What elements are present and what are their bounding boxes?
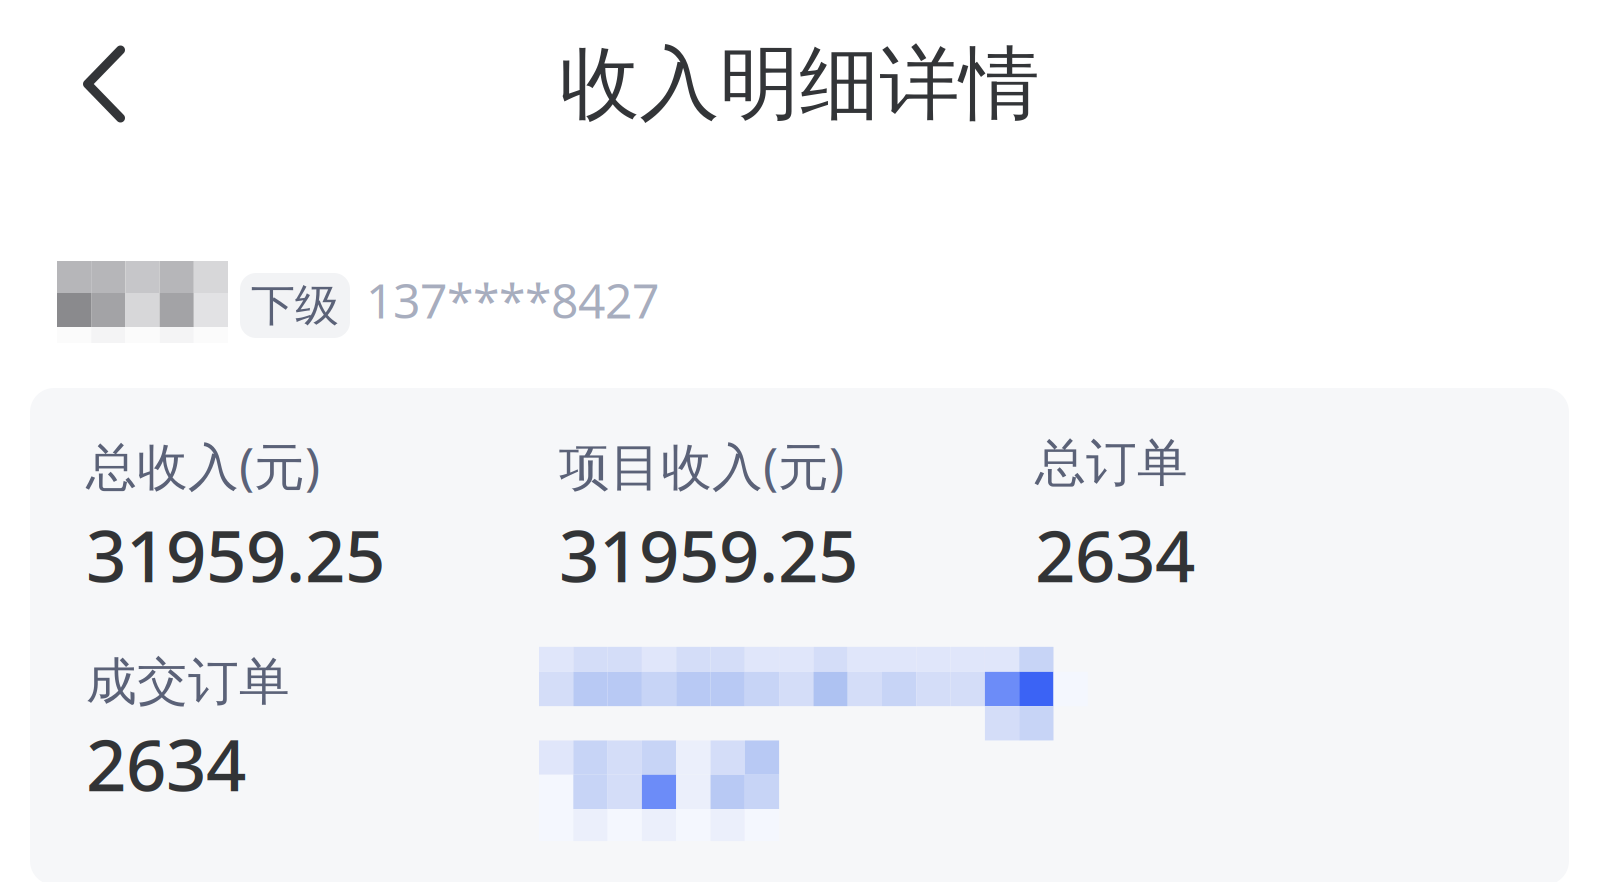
staticText: 2634 bbox=[86, 717, 246, 811]
staticText: 收入明细详情 bbox=[559, 35, 1039, 133]
staticText: 137****8427 bbox=[366, 268, 659, 332]
staticText: 成交订单 bbox=[86, 651, 290, 713]
staticText: 31959.25 bbox=[86, 508, 385, 602]
staticText: 总订单 bbox=[1035, 432, 1188, 494]
button[interactable]: Back bbox=[0, 0, 160, 146]
staticText: 2634 bbox=[1035, 508, 1195, 602]
staticText: 下级 bbox=[251, 278, 339, 332]
staticText: 总收入(元) bbox=[86, 432, 320, 499]
staticText: 31959.25 bbox=[559, 508, 858, 602]
staticText: 项目收入(元) bbox=[559, 432, 844, 499]
